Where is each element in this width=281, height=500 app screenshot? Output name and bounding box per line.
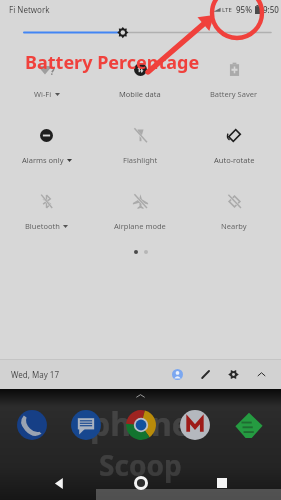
staticText: 95% <box>236 4 252 15</box>
staticText: 9:50 <box>263 4 279 15</box>
button[interactable]: Recents <box>209 470 235 496</box>
staticText: Battery Saver <box>210 89 258 99</box>
staticText: Fi Network <box>9 4 50 15</box>
button[interactable]: Home <box>127 469 155 497</box>
button[interactable]: Back <box>46 470 72 496</box>
staticText: Flashlight <box>123 155 158 165</box>
staticText: Battery Percentage <box>25 50 200 75</box>
button[interactable]: Nearby <box>187 191 281 232</box>
staticText: Airplane mode <box>114 221 166 231</box>
button[interactable]: Chrome <box>121 405 161 445</box>
button[interactable]: Messages <box>66 405 106 445</box>
button[interactable]: Brightness <box>0 18 281 44</box>
button[interactable]: Feedly <box>229 405 269 445</box>
staticText: Bluetooth <box>25 221 60 231</box>
button[interactable]: Edit <box>195 364 215 384</box>
staticText: Auto-rotate <box>214 155 255 165</box>
staticText: Nearby <box>221 221 247 231</box>
staticText: Wed, May 17 <box>11 369 59 380</box>
button[interactable]: Mobile data <box>93 59 187 100</box>
button[interactable]: Auto-rotate <box>187 125 281 166</box>
staticText: Mobile data <box>119 89 161 99</box>
button[interactable]: Collapse <box>251 364 271 384</box>
button[interactable]: Phone <box>12 405 52 445</box>
button[interactable]: Settings <box>223 364 243 384</box>
button[interactable]: Flashlight <box>93 125 187 166</box>
button[interactable]: Gmail <box>175 405 215 445</box>
button[interactable]: Airplane mode <box>93 191 187 232</box>
staticText: LTE <box>222 6 232 14</box>
button[interactable]: Battery Saver <box>187 59 281 100</box>
staticText: Scoop <box>99 446 182 484</box>
button[interactable]: Wi-Fi <box>0 59 93 100</box>
button[interactable]: User profile <box>167 364 187 384</box>
staticText: Wi-Fi <box>34 89 52 99</box>
button[interactable]: Alarms only <box>0 125 93 166</box>
staticText: Alarms only <box>22 155 64 165</box>
staticText: phone <box>90 402 191 446</box>
button[interactable]: Bluetooth <box>0 191 93 232</box>
